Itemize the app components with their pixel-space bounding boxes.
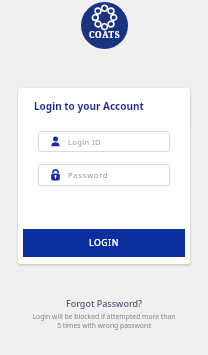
- staticText: Password: [68, 170, 109, 180]
- staticText: COATS: [81, 29, 128, 40]
- staticText: Login will be blocked if attempted more …: [0, 312, 208, 330]
- button[interactable]: LOGIN: [23, 229, 185, 257]
- staticText: Login ID: [68, 137, 101, 147]
- staticText: Login to your Account: [34, 99, 144, 113]
- staticText: LOGIN: [89, 237, 119, 249]
- button[interactable]: Login ID: [38, 131, 170, 152]
- button[interactable]: Forgot Password?: [0, 297, 208, 309]
- button[interactable]: Password: [38, 164, 170, 186]
